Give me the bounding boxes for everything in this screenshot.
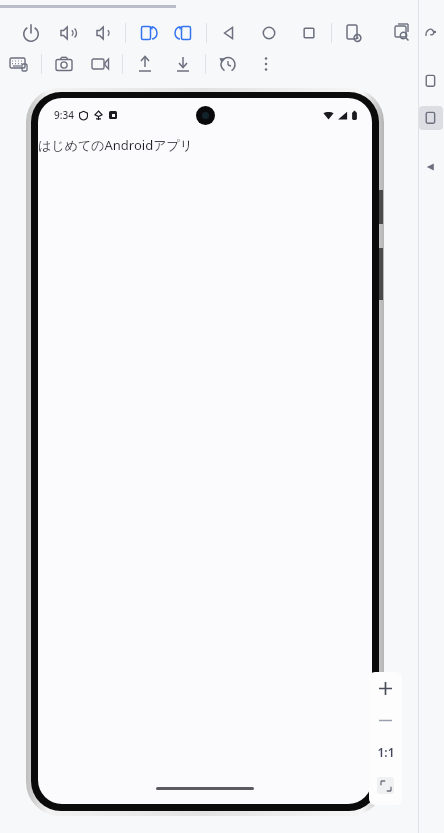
button[interactable]: Back [218,22,240,44]
button[interactable]: Home [258,22,280,44]
staticText: 9:34 [54,108,74,122]
button[interactable]: Rotate left [137,22,159,44]
button[interactable]: Fit to screen [369,768,402,802]
button[interactable]: Volume up [56,22,78,44]
button[interactable]: Rotate right [173,22,195,44]
button[interactable]: More [255,53,277,75]
button[interactable]: History [217,53,239,75]
button[interactable]: Overview [298,22,320,44]
button[interactable]: Download [172,53,194,75]
button[interactable]: Zoom in [369,672,402,704]
button[interactable]: Device settings [343,22,365,44]
button[interactable]: Record screen [89,53,111,75]
button[interactable]: Zoom out [369,704,402,736]
button[interactable]: Volume down [92,22,114,44]
button[interactable]: Keyboard [8,53,30,75]
staticText: はじめてのAndroidアプリ [38,136,194,154]
button[interactable]: Device manager [419,106,443,130]
button[interactable]: Layout inspector [420,22,442,44]
button[interactable]: Collapse [420,156,442,178]
staticText: 1:1 [377,744,395,760]
button[interactable]: Screenshot [53,53,75,75]
button[interactable]: Power [20,22,42,44]
button[interactable]: Device inspect [391,22,413,44]
button[interactable]: Running devices [420,70,442,92]
button[interactable]: 1:1 [369,736,402,768]
button[interactable]: Upload [134,53,156,75]
